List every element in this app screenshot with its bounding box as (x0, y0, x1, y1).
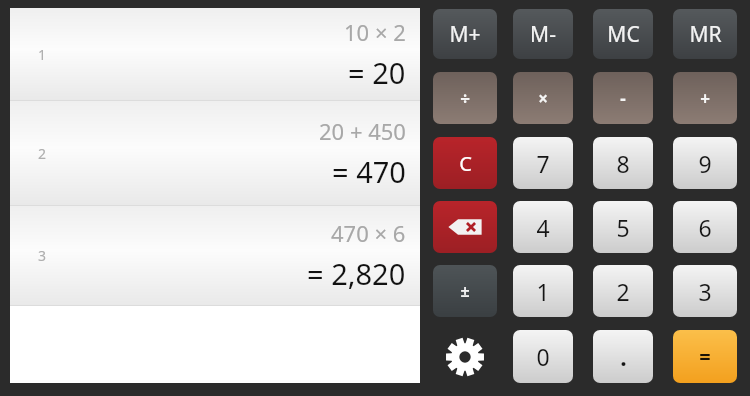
staticText: 3 (698, 276, 712, 307)
staticText: ÷ (460, 87, 470, 110)
staticText: + (700, 87, 710, 110)
button[interactable]: Settings (433, 330, 497, 383)
staticText: 470 × 6 (331, 218, 406, 248)
staticText: = (699, 343, 711, 370)
button[interactable]: 3 (673, 265, 737, 317)
button[interactable]: ÷ (433, 72, 497, 124)
button[interactable]: 2 (593, 265, 653, 317)
button[interactable]: 1 (513, 265, 573, 317)
button[interactable]: 8 (593, 137, 653, 189)
staticText: C (459, 150, 472, 177)
staticText: 2 (38, 144, 47, 163)
button[interactable]: MC (593, 9, 653, 59)
button[interactable]: 2 (10, 101, 420, 205)
staticText: = 20 (348, 53, 406, 92)
staticText: M+ (449, 20, 481, 49)
button[interactable]: 7 (513, 137, 573, 189)
staticText: = 2,820 (307, 254, 406, 293)
button[interactable]: . (593, 330, 653, 383)
staticText: 6 (698, 212, 712, 243)
button[interactable]: = (673, 330, 737, 383)
button[interactable]: 1 (10, 8, 420, 100)
staticText: ± (460, 280, 470, 302)
button[interactable]: 3 (10, 206, 420, 305)
staticText: - (620, 87, 626, 110)
button[interactable]: M+ (433, 9, 497, 59)
button[interactable]: 0 (513, 330, 573, 383)
staticText: 5 (616, 212, 630, 243)
staticText: 8 (616, 148, 630, 179)
staticText: 4 (536, 212, 550, 243)
button[interactable]: + (673, 72, 737, 124)
button[interactable]: 5 (593, 201, 653, 253)
button[interactable]: 6 (673, 201, 737, 253)
staticText: 7 (536, 148, 550, 179)
button[interactable]: 9 (673, 137, 737, 189)
staticText: 0 (536, 341, 550, 372)
button[interactable]: M- (513, 9, 573, 59)
button[interactable]: Backspace (433, 201, 497, 253)
button[interactable]: ± (433, 265, 497, 317)
staticText: × (538, 87, 548, 110)
staticText: 1 (38, 45, 47, 64)
button[interactable]: C (433, 137, 497, 189)
button[interactable]: 4 (513, 201, 573, 253)
staticText: 9 (698, 148, 712, 179)
staticText: 10 × 2 (344, 17, 406, 47)
button[interactable]: MR (673, 9, 737, 59)
staticText: 2 (616, 276, 630, 307)
staticText: 1 (536, 276, 550, 307)
staticText: MR (689, 20, 722, 49)
staticText: = 470 (332, 152, 406, 191)
staticText: 3 (38, 246, 47, 265)
button[interactable]: - (593, 72, 653, 124)
staticText: . (620, 341, 627, 372)
staticText: M- (530, 20, 556, 49)
button[interactable]: × (513, 72, 573, 124)
staticText: MC (607, 20, 640, 49)
staticText: 20 + 450 (319, 116, 406, 146)
